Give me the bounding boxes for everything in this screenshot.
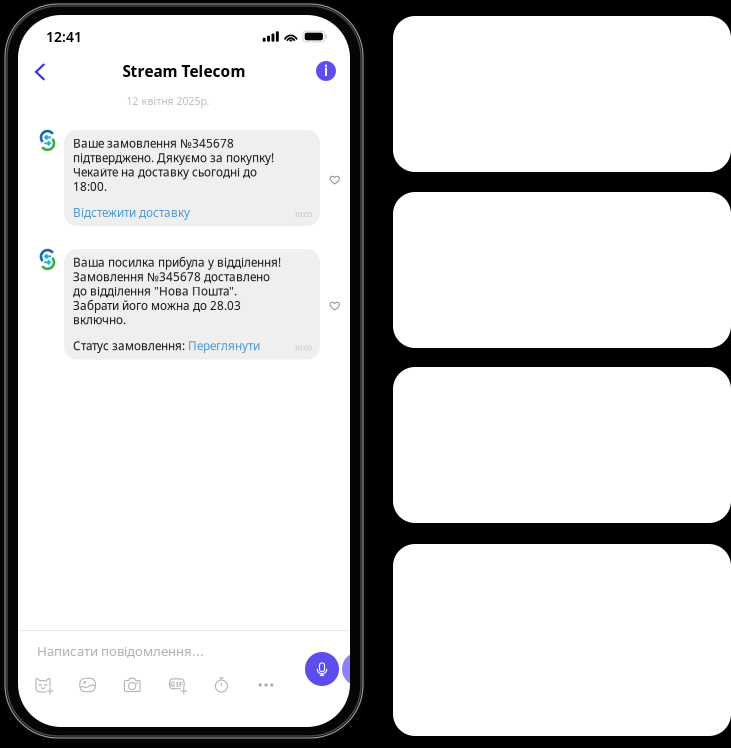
button[interactable]: Back [25,57,55,87]
button[interactable]: React [324,169,345,190]
button[interactable]: Photos [75,673,101,697]
staticText: до відділення "Нова Пошта". [73,283,237,299]
staticText: Stream Telecom [122,61,245,81]
staticText: Ваша посилка прибула у відділення! [73,254,281,270]
staticText: i [323,60,328,81]
staticText: Ваше замовлення №345678 [73,135,234,151]
staticText: включно. [73,312,126,328]
staticText: Замовлення №345678 доставлено [73,269,270,284]
button[interactable]: Disappearing messages [208,673,234,697]
staticText: 12 квітня 2025р. [126,94,209,108]
staticText: Переглянути [188,338,260,354]
staticText: Забрати його можна до 28.03 [73,298,241,313]
staticText: підтверджено. Дякуємо за покупку! [73,150,274,165]
staticText: Чекайте на доставку сьогодні до [73,164,257,180]
button[interactable]: GIF [164,673,190,697]
staticText: Відстежити доставку [73,205,190,220]
staticText: 10:05 [294,209,312,219]
staticText: 18:00. [73,179,107,194]
button[interactable]: Camera [119,673,145,697]
staticText: Статус замовлення: [73,338,188,354]
staticText: Написати повідомлення... [37,642,204,659]
staticText: 10:05 [294,343,312,353]
button[interactable]: More options [253,673,279,697]
staticText: 12:41 [46,27,82,46]
staticText: GIF [170,679,183,689]
button[interactable]: Record voice message [305,652,339,686]
button[interactable]: Stickers [30,673,56,697]
button[interactable]: Chat info [311,56,341,86]
button[interactable]: React [324,295,345,316]
